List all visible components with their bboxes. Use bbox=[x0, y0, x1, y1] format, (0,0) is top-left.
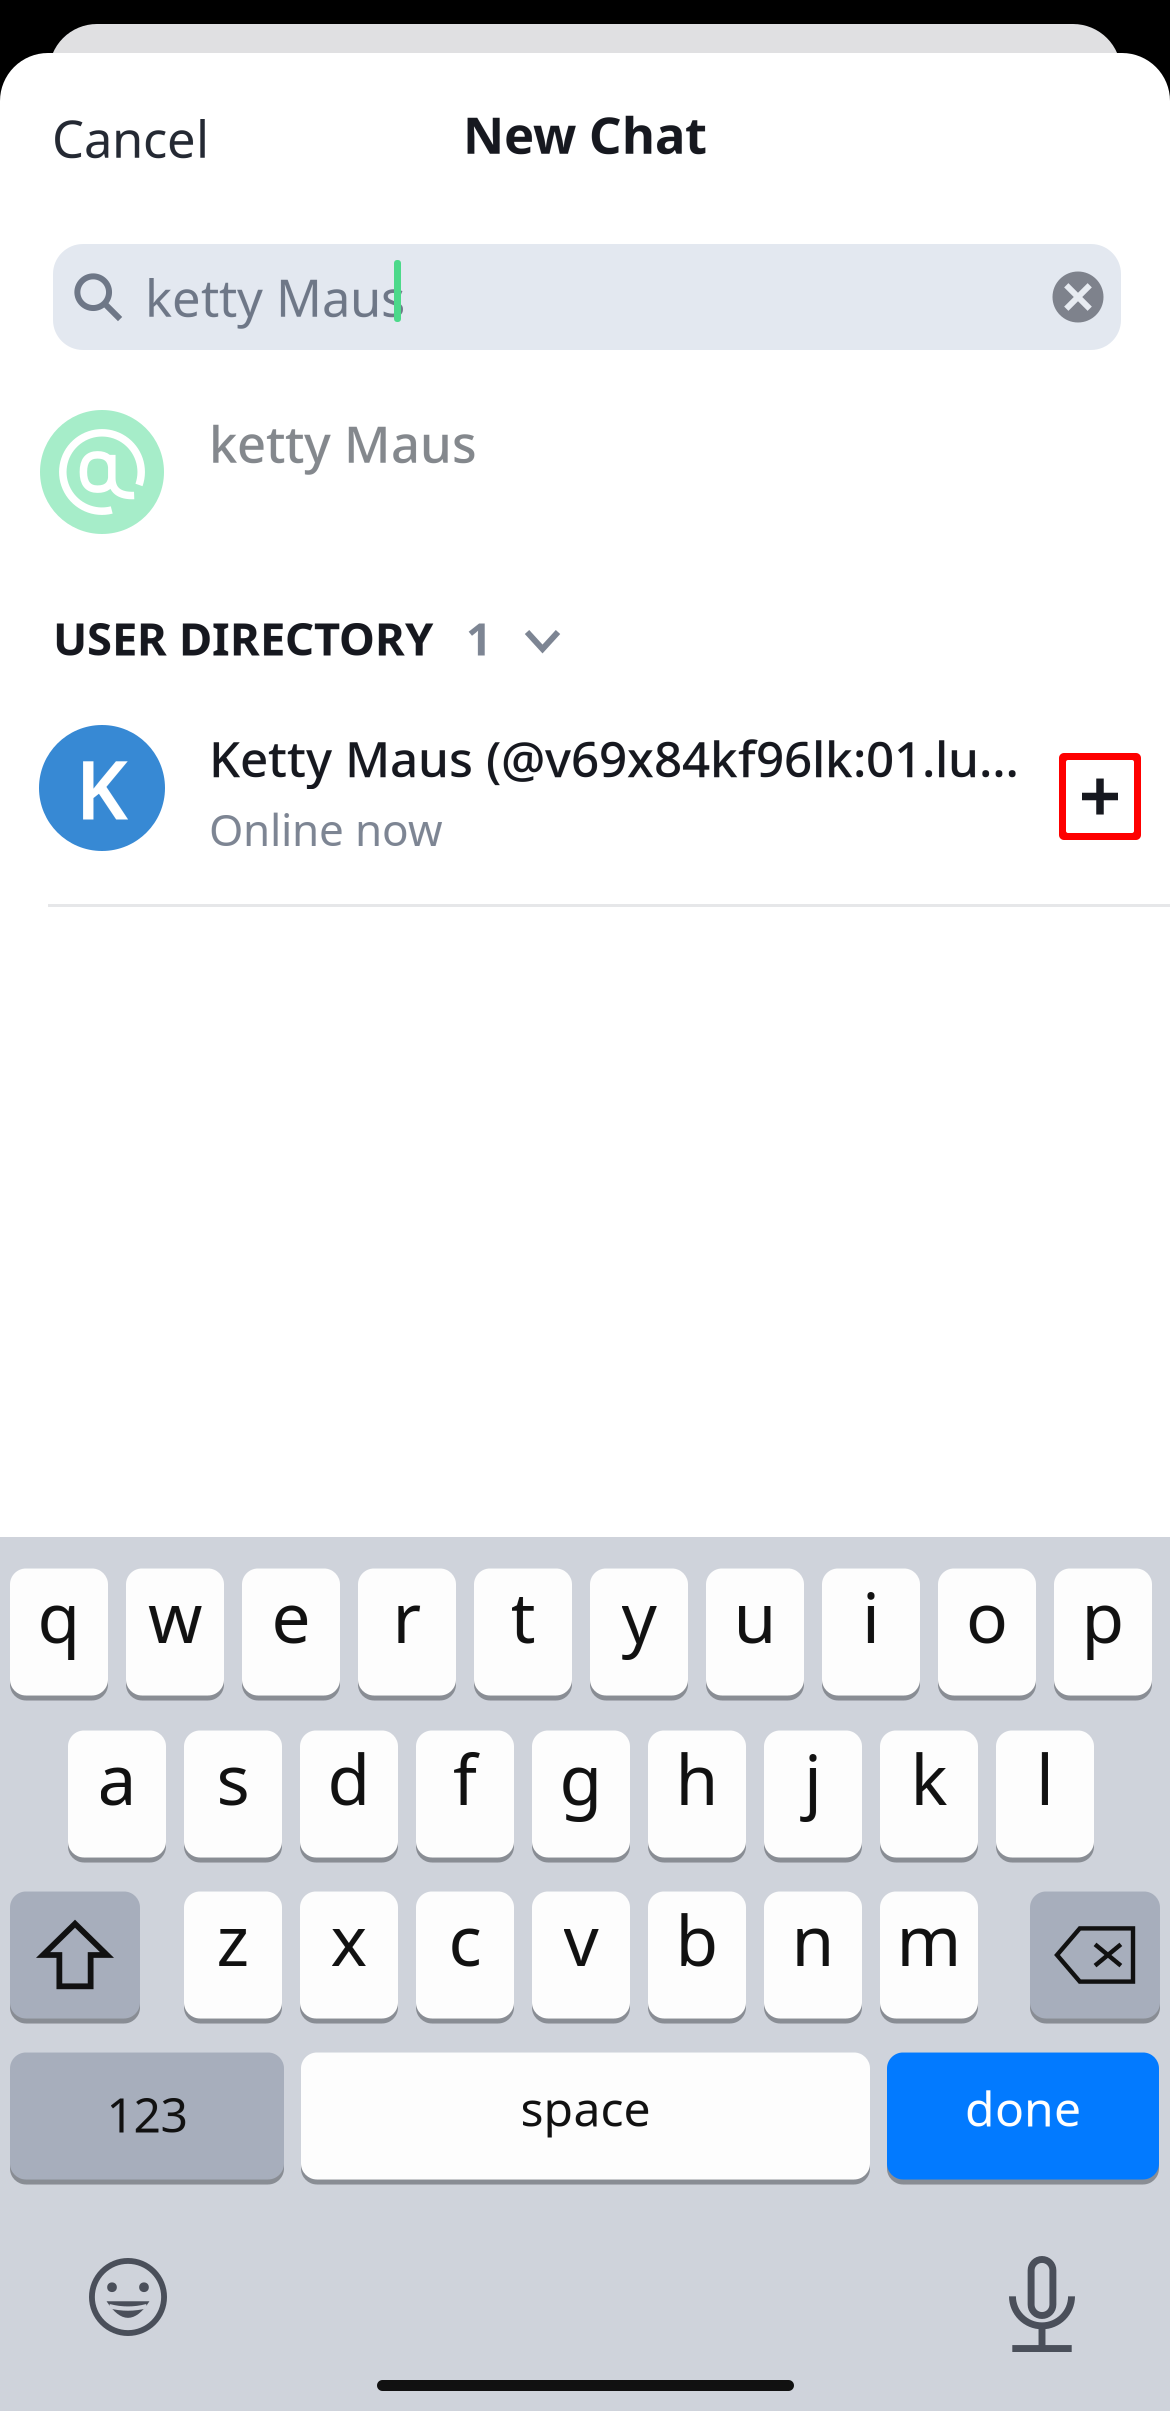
staticText: d bbox=[327, 1732, 370, 1824]
staticText: w bbox=[148, 1570, 202, 1662]
staticText: a bbox=[97, 1732, 136, 1824]
staticText: Ketty Maus (@v69x84kf96lk:01.lu… bbox=[209, 725, 1019, 791]
button[interactable]: Cancel bbox=[52, 90, 242, 186]
staticText: 1 bbox=[466, 608, 492, 668]
button[interactable]: Emoji keyboard bbox=[73, 2242, 183, 2352]
button[interactable]: i bbox=[822, 1566, 920, 1698]
button[interactable]: done bbox=[887, 2050, 1159, 2182]
button[interactable]: h bbox=[648, 1728, 746, 1860]
button[interactable]: Delete bbox=[1030, 1889, 1160, 2021]
button[interactable]: l bbox=[996, 1728, 1094, 1860]
staticText: s bbox=[216, 1732, 249, 1824]
staticText: Online now bbox=[209, 800, 443, 858]
button[interactable]: m bbox=[880, 1889, 978, 2021]
staticText: 123 bbox=[106, 2082, 187, 2146]
staticText: v bbox=[563, 1893, 598, 1985]
button[interactable]: K bbox=[0, 708, 1170, 893]
button[interactable]: n bbox=[764, 1889, 862, 2021]
staticText: i bbox=[862, 1570, 880, 1662]
staticText: g bbox=[559, 1732, 602, 1824]
staticText: c bbox=[448, 1893, 481, 1985]
staticText: New Chat bbox=[463, 100, 707, 168]
staticText: o bbox=[966, 1570, 1008, 1662]
staticText: t bbox=[510, 1570, 535, 1662]
staticText: p bbox=[1081, 1570, 1124, 1662]
button[interactable]: z bbox=[184, 1889, 282, 2021]
button[interactable]: Dictation bbox=[987, 2249, 1097, 2359]
button[interactable]: j bbox=[764, 1728, 862, 1860]
staticText: x bbox=[330, 1893, 367, 1985]
staticText: m bbox=[896, 1893, 961, 1985]
staticText: u bbox=[733, 1570, 776, 1662]
button[interactable]: k bbox=[880, 1728, 978, 1860]
button[interactable]: u bbox=[706, 1566, 804, 1698]
button[interactable]: 123 bbox=[10, 2050, 284, 2182]
button[interactable]: o bbox=[938, 1566, 1036, 1698]
staticText: e bbox=[271, 1570, 310, 1662]
staticText: y bbox=[621, 1570, 656, 1662]
staticText: ketty Maus bbox=[209, 409, 477, 477]
button[interactable]: q bbox=[10, 1566, 108, 1698]
staticText: space bbox=[520, 2076, 650, 2140]
button[interactable]: d bbox=[300, 1728, 398, 1860]
staticText: Cancel bbox=[52, 104, 209, 172]
staticText: j bbox=[804, 1732, 822, 1824]
staticText: K bbox=[75, 734, 128, 842]
button[interactable]: ketty Maus bbox=[0, 399, 1170, 545]
staticText: f bbox=[453, 1732, 477, 1824]
button[interactable]: g bbox=[532, 1728, 630, 1860]
button[interactable]: Shift bbox=[10, 1889, 140, 2021]
button[interactable]: c bbox=[416, 1889, 514, 2021]
button[interactable]: f bbox=[416, 1728, 514, 1860]
button[interactable]: USER DIRECTORY bbox=[0, 598, 1170, 678]
button[interactable]: t bbox=[474, 1566, 572, 1698]
staticText: n bbox=[791, 1893, 834, 1985]
button[interactable]: Clear search text bbox=[1037, 256, 1119, 338]
button[interactable]: x bbox=[300, 1889, 398, 2021]
staticText: l bbox=[1036, 1732, 1054, 1824]
button[interactable]: a bbox=[68, 1728, 166, 1860]
staticText: done bbox=[965, 2076, 1081, 2140]
staticText: q bbox=[37, 1570, 80, 1662]
button[interactable]: y bbox=[590, 1566, 688, 1698]
staticText: h bbox=[675, 1732, 718, 1824]
button[interactable]: w bbox=[126, 1566, 224, 1698]
button[interactable]: space bbox=[301, 2050, 870, 2182]
staticText: k bbox=[910, 1732, 947, 1824]
staticText: b bbox=[675, 1893, 718, 1985]
staticText: r bbox=[392, 1570, 421, 1662]
button[interactable]: s bbox=[184, 1728, 282, 1860]
staticText: USER DIRECTORY bbox=[53, 608, 433, 668]
button[interactable]: e bbox=[242, 1566, 340, 1698]
staticText: ketty Maus bbox=[145, 263, 405, 331]
staticText: z bbox=[216, 1893, 249, 1985]
button[interactable]: r bbox=[358, 1566, 456, 1698]
button[interactable]: v bbox=[532, 1889, 630, 2021]
button[interactable]: p bbox=[1054, 1566, 1152, 1698]
button[interactable]: b bbox=[648, 1889, 746, 2021]
